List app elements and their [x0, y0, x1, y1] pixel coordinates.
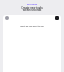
button[interactable]: Menu — [55, 16, 59, 20]
staticText: What do you want to do? — [3, 25, 61, 28]
staticText: GET STARTED — [0, 3, 64, 5]
button[interactable]: Profile — [5, 16, 9, 20]
staticText: Create new tasks within seconds — [0, 6, 64, 12]
